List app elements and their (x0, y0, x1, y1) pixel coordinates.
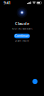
staticText: Learn more (14, 39, 29, 43)
staticText: Your AI assistant (11, 27, 32, 30)
button[interactable]: Learn more (14, 39, 29, 43)
staticText: 9:41 (3, 0, 10, 5)
staticText: Continue (15, 34, 29, 38)
button[interactable]: Continue (14, 34, 30, 38)
staticText: Claude (15, 21, 29, 26)
button[interactable]: Compose (32, 79, 38, 84)
